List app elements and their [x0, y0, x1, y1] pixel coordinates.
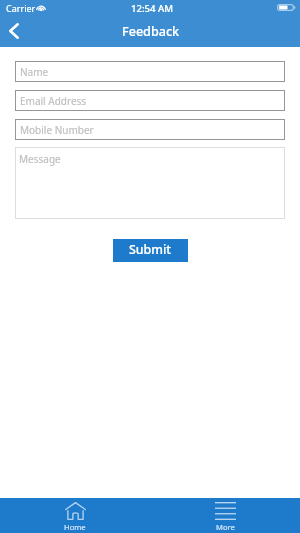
staticText: Submit	[129, 241, 172, 258]
button[interactable]: Home	[0, 498, 150, 533]
button[interactable]: Message	[15, 147, 285, 219]
button[interactable]: Mobile Number	[15, 119, 285, 140]
staticText: Email Address	[20, 94, 87, 108]
button[interactable]: More	[150, 498, 300, 533]
button[interactable]: Name	[15, 61, 285, 82]
staticText: Feedback	[122, 23, 180, 40]
staticText: Name	[20, 65, 49, 79]
staticText: Home	[64, 522, 86, 532]
staticText: Mobile Number	[20, 123, 94, 137]
staticText: Carrier	[6, 2, 36, 14]
staticText: 12:54 AM	[131, 2, 174, 15]
button[interactable]: Email Address	[15, 90, 285, 111]
button[interactable]: Submit	[113, 239, 188, 262]
staticText: More	[216, 522, 235, 532]
button[interactable]: Back	[0, 20, 29, 42]
staticText: Message	[19, 152, 61, 166]
